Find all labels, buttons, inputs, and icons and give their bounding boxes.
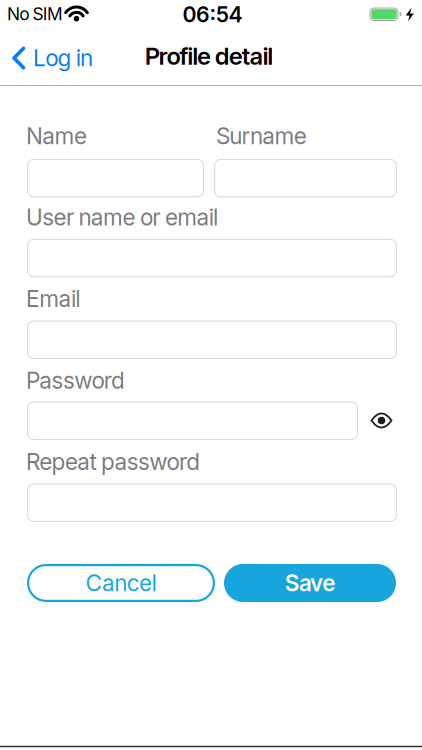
staticText: Profile detail: [145, 42, 273, 70]
staticText: No SIM: [7, 4, 63, 24]
button[interactable]: Save: [224, 564, 396, 602]
staticText: Cancel: [85, 570, 156, 596]
staticText: Surname: [216, 123, 307, 149]
staticText: User name or email: [26, 204, 218, 231]
staticText: Email: [26, 285, 80, 312]
button[interactable]: Cancel: [27, 564, 215, 602]
button[interactable]: Show password: [370, 412, 392, 429]
staticText: 06:54: [182, 2, 242, 27]
button[interactable]: Log in: [12, 43, 122, 73]
staticText: Password: [26, 367, 125, 394]
staticText: Save: [285, 570, 335, 596]
staticText: Name: [26, 123, 87, 149]
staticText: Log in: [33, 45, 93, 71]
staticText: Repeat password: [26, 448, 200, 475]
